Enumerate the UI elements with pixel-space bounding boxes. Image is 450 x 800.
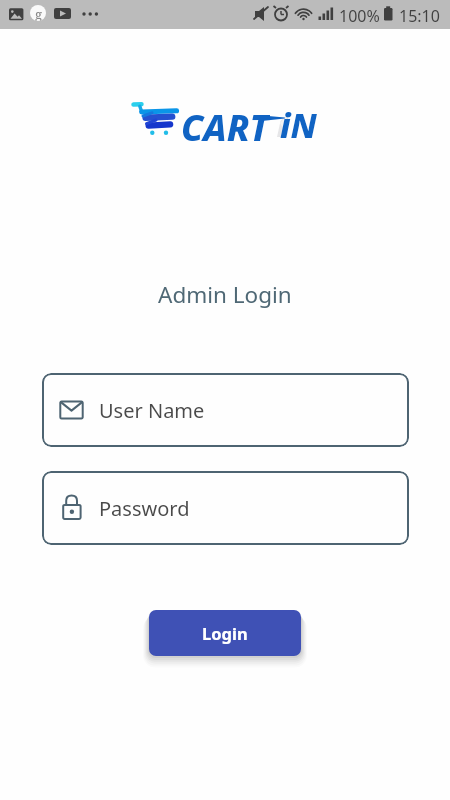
staticText: Password [99, 495, 190, 522]
staticText: iN [280, 102, 317, 148]
staticText: User Name [99, 397, 205, 424]
button[interactable]: Password [42, 471, 409, 545]
button[interactable]: User Name [42, 373, 409, 447]
staticText: 100% [339, 5, 380, 27]
staticText: g [35, 5, 42, 21]
button[interactable]: Login [149, 610, 301, 656]
staticText: CART [181, 103, 270, 151]
staticText: 15:10 [399, 5, 440, 27]
staticText: Login [202, 622, 248, 644]
staticText: Admin Login [158, 279, 292, 310]
